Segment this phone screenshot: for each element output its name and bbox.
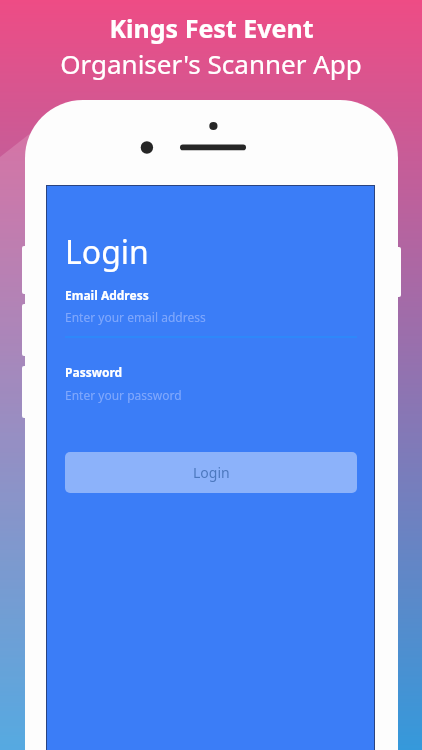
button[interactable]: Email Address <box>65 285 357 338</box>
staticText: Email Address <box>65 287 149 303</box>
button[interactable]: Password <box>65 362 357 415</box>
staticText: Organiser's Scanner App <box>60 46 362 81</box>
button[interactable]: Login <box>65 452 357 493</box>
staticText: Enter your password <box>65 387 182 403</box>
staticText: Kings Fest Event <box>109 11 314 45</box>
staticText: Password <box>65 364 123 380</box>
staticText: Login <box>65 230 149 274</box>
staticText: Login <box>193 463 230 482</box>
staticText: Enter your email address <box>65 309 206 325</box>
